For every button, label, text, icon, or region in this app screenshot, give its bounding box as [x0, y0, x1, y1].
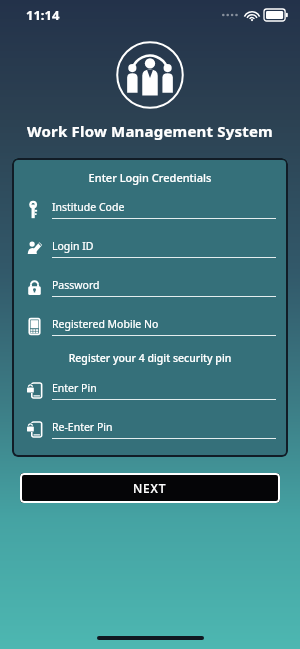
- staticText: Re-Enter Pin: [52, 420, 113, 434]
- staticText: Enter Pin: [52, 381, 97, 395]
- staticText: NEXT: [133, 480, 167, 496]
- staticText: 11:14: [26, 6, 60, 24]
- staticText: Login ID: [52, 239, 94, 253]
- button[interactable]: Login ID: [12, 236, 288, 260]
- button[interactable]: Password: [12, 275, 288, 299]
- button[interactable]: Institude Code: [12, 197, 288, 221]
- staticText: Institude Code: [52, 200, 125, 214]
- staticText: Password: [52, 278, 100, 292]
- button[interactable]: Enter Pin: [12, 378, 288, 402]
- button[interactable]: NEXT: [20, 473, 280, 503]
- button[interactable]: Re-Enter Pin: [12, 417, 288, 441]
- button[interactable]: Registered Mobile No: [12, 314, 288, 338]
- staticText: Register your 4 digit security pin: [12, 351, 288, 365]
- staticText: Work Flow Management System: [0, 121, 300, 141]
- staticText: Registered Mobile No: [52, 317, 159, 331]
- staticText: Enter Login Credentials: [12, 170, 288, 185]
